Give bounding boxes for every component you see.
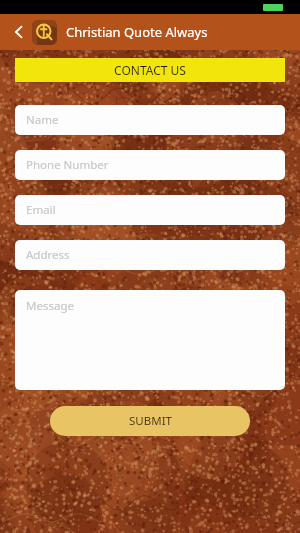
button[interactable]: Name [15, 105, 285, 135]
staticText: CONTACT US [114, 62, 186, 78]
button[interactable]: Message [15, 290, 285, 390]
staticText: Address [26, 247, 70, 263]
button[interactable]: Email [15, 195, 285, 225]
staticText: Phone Number [26, 157, 109, 173]
button[interactable]: Address [15, 240, 285, 270]
staticText: Christian Quote Always [66, 23, 208, 41]
staticText: Name [26, 112, 59, 128]
staticText: Email [26, 202, 56, 218]
button[interactable]: Back [9, 17, 29, 47]
button[interactable]: App icon [32, 20, 57, 45]
staticText: SUBMIT [129, 413, 172, 429]
staticText: Message [26, 298, 74, 314]
button[interactable]: SUBMIT [50, 406, 250, 436]
button[interactable]: CONTACT US [15, 58, 285, 82]
button[interactable]: Phone Number [15, 150, 285, 180]
